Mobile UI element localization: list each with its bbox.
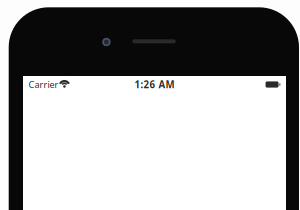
staticText: 1:26 AM bbox=[134, 78, 174, 91]
staticText: Carrier bbox=[28, 78, 58, 91]
